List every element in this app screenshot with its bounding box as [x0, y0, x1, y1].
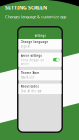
staticText: Keep design on screen: [20, 58, 44, 65]
staticText: Screen settings: [20, 54, 41, 57]
staticText: Theme Store: [20, 71, 39, 75]
staticText: About codes: [20, 85, 38, 88]
staticText: Give all the star: [20, 89, 41, 93]
button[interactable]: About codes: [18, 84, 61, 94]
staticText: Settings: [34, 34, 45, 37]
button[interactable]: Change language: [18, 39, 61, 49]
staticText: Change language: [20, 40, 48, 44]
staticText: New & old: [20, 76, 34, 79]
staticText: Changes language & customize app: [5, 14, 66, 19]
button[interactable]: Screen settings: [18, 53, 61, 67]
staticText: SETTING SCREEN: [5, 4, 47, 11]
staticText: English: [20, 45, 30, 48]
button[interactable]: Theme Store: [18, 70, 61, 80]
